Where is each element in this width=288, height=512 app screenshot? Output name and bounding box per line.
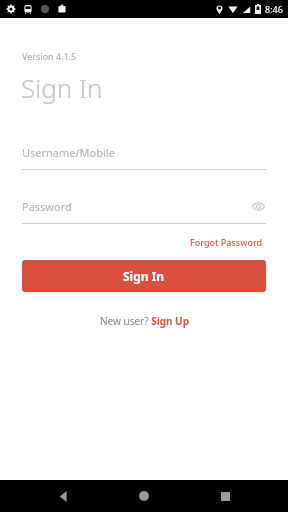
button[interactable]: Sign In — [22, 260, 266, 292]
staticText: Sign In — [21, 70, 103, 105]
button[interactable]: Forgot Password — [188, 234, 265, 250]
button[interactable]: Home — [126, 480, 162, 512]
button[interactable]: Username/Mobile — [22, 145, 266, 170]
button[interactable]: Password — [22, 198, 266, 224]
button[interactable]: New user? Sign Up — [97, 311, 192, 331]
button[interactable]: Back — [45, 480, 81, 512]
staticText: Username/Mobile — [22, 145, 266, 160]
staticText: Password — [22, 199, 250, 214]
staticText: 8:46 — [265, 3, 283, 15]
staticText: New user? Sign Up — [100, 314, 189, 328]
staticText: Version 4.1.5 — [22, 50, 77, 62]
staticText: Sign In — [123, 268, 165, 284]
button[interactable]: Recent apps — [207, 480, 243, 512]
button[interactable]: Show password — [250, 198, 266, 214]
